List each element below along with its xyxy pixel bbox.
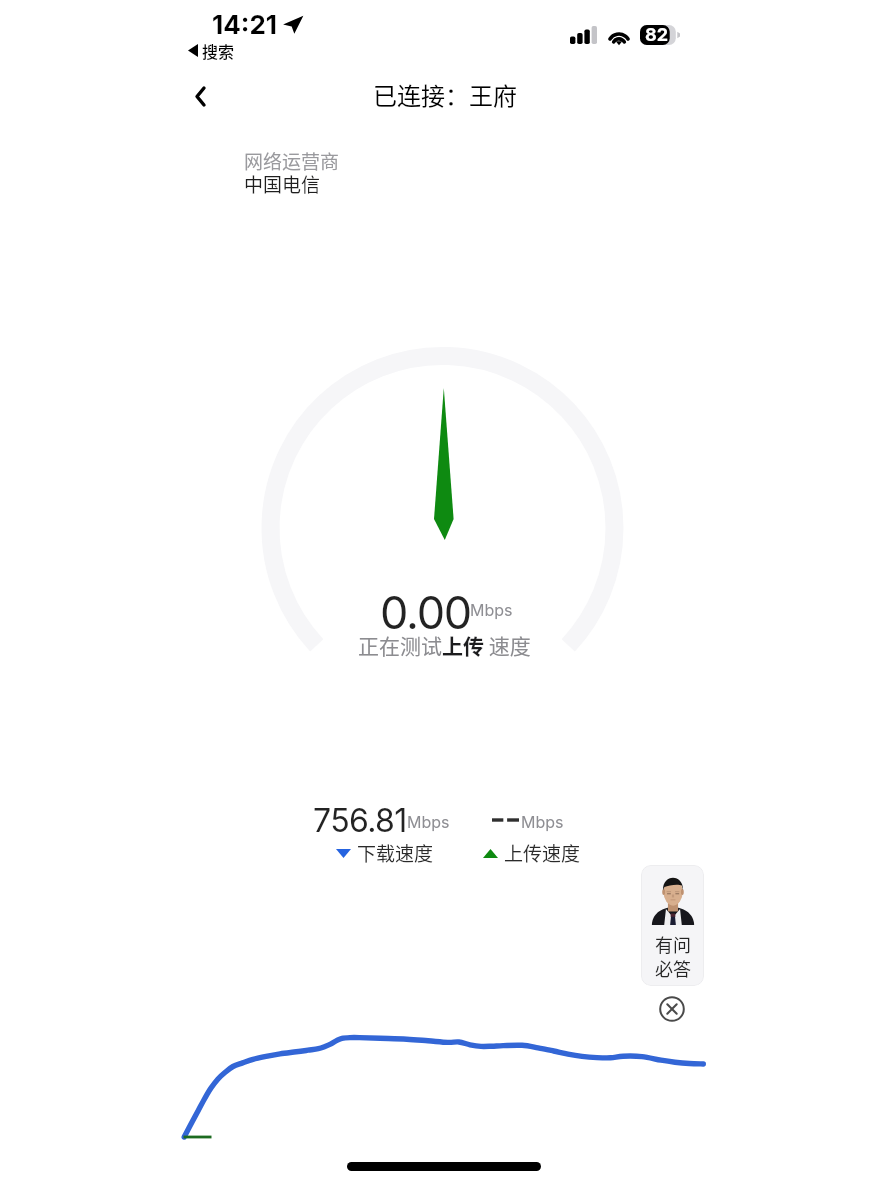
- staticText: 网络运营商: [244, 147, 340, 175]
- staticText: 上传速度: [504, 839, 581, 867]
- staticText: 正在测试上传 速度: [358, 630, 531, 660]
- staticText: 中国电信: [244, 170, 321, 198]
- button[interactable]: 上传速度: [483, 839, 581, 867]
- staticText: 756.81: [313, 801, 407, 840]
- staticText: Mbps: [407, 812, 450, 831]
- staticText: 下载速度: [357, 839, 434, 867]
- staticText: 搜索: [202, 39, 235, 62]
- button[interactable]: 有问 必答: [641, 865, 704, 986]
- staticText: Mbps: [470, 600, 513, 619]
- staticText: Mbps: [521, 812, 564, 831]
- staticText: 14:21: [212, 9, 278, 40]
- button[interactable]: 返回: [176, 72, 224, 120]
- staticText: 0.00: [380, 585, 472, 639]
- staticText: 已连接：王府: [373, 77, 517, 112]
- staticText: 82: [645, 24, 669, 44]
- staticText: 有问 必答: [655, 931, 691, 981]
- button[interactable]: 下载速度: [336, 839, 434, 867]
- button[interactable]: 搜索: [188, 39, 235, 62]
- button[interactable]: 关闭: [659, 996, 685, 1022]
